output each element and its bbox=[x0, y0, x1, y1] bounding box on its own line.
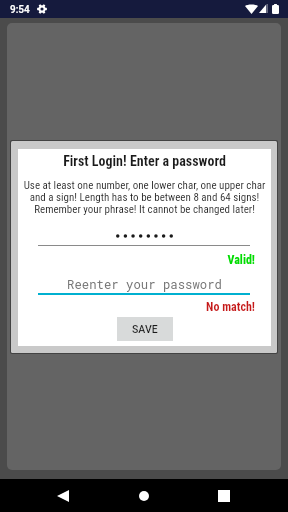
staticText: 9:54 bbox=[10, 4, 30, 16]
button[interactable]: Recent apps bbox=[200, 479, 248, 512]
staticText: First Login! Enter a password bbox=[18, 153, 271, 169]
button[interactable]: SAVE bbox=[117, 317, 173, 341]
other: Settings bbox=[37, 4, 47, 14]
staticText: Use at least one number, one lower char,… bbox=[18, 179, 271, 216]
button[interactable]: Reenter your password bbox=[38, 276, 250, 295]
staticText: Reenter your password bbox=[67, 276, 222, 292]
staticText: No match! bbox=[18, 300, 255, 314]
button[interactable]: Back bbox=[39, 479, 87, 512]
staticText: Valid! bbox=[18, 253, 255, 267]
button[interactable]: Home bbox=[120, 479, 168, 512]
staticText: SAVE bbox=[132, 323, 158, 335]
button[interactable] bbox=[38, 229, 250, 246]
